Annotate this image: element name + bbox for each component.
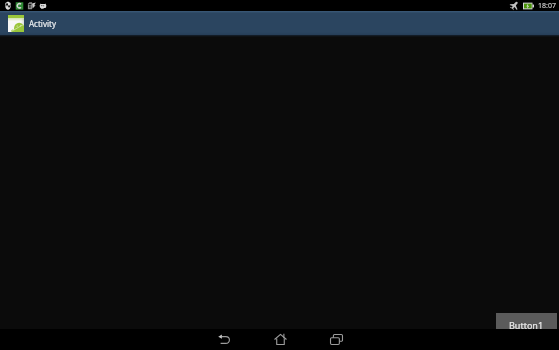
button[interactable]: Button1 xyxy=(496,313,557,329)
button[interactable]: Activity xyxy=(0,11,559,35)
button[interactable]: Back xyxy=(212,329,236,350)
staticText: Button1 xyxy=(509,319,544,329)
staticText: 18:07 xyxy=(538,1,556,11)
staticText: Activity xyxy=(29,18,56,29)
button[interactable]: Recent apps xyxy=(324,329,348,350)
button[interactable]: Home xyxy=(268,329,292,350)
